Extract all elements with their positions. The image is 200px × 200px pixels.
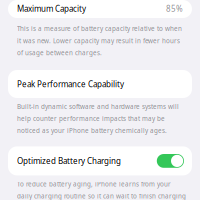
- button[interactable]: Peak Performance Capability: [8, 70, 192, 98]
- staticText: 85%: [166, 3, 183, 14]
- staticText: Built-in dynamic software and hardware s…: [17, 102, 179, 135]
- staticText: To reduce battery aging, iPhone learns f…: [17, 180, 186, 200]
- button[interactable]: Maximum Capacity: [8, 0, 192, 18]
- staticText: This is a measure of battery capacity re…: [17, 24, 182, 57]
- staticText: Maximum Capacity: [17, 3, 86, 14]
- staticText: Optimized Battery Charging: [17, 155, 121, 166]
- staticText: Peak Performance Capability: [17, 79, 124, 90]
- button[interactable]: Optimized Battery Charging: [8, 146, 192, 175]
